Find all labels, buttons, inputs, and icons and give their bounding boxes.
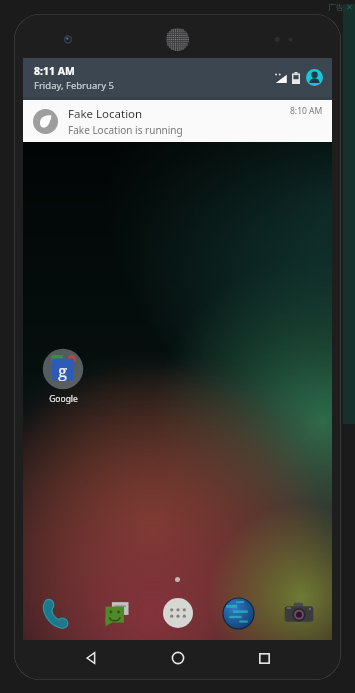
button[interactable]: Camera [278,592,320,634]
staticText: 8:11 AM [34,64,75,78]
button[interactable]: Browser [217,592,259,634]
staticText: 8:10 AM [290,105,323,117]
button[interactable]: Messaging [96,592,138,634]
button[interactable]: Fake Location [23,100,332,142]
button[interactable]: Phone [35,592,77,634]
staticText: Fake Location [68,106,143,122]
button[interactable]: Back [72,640,110,676]
button[interactable]: Home [159,640,197,676]
staticText: Google [49,393,78,405]
staticText: Friday, February 5 [34,79,114,92]
button[interactable]: User account [306,69,323,86]
button[interactable]: g [37,347,89,405]
button[interactable]: Apps [157,592,199,634]
staticText: g [58,359,68,382]
staticText: Fake Location is running [68,123,183,137]
staticText: 广告 ✕ [328,1,353,12]
button[interactable]: Recent apps [245,640,283,676]
